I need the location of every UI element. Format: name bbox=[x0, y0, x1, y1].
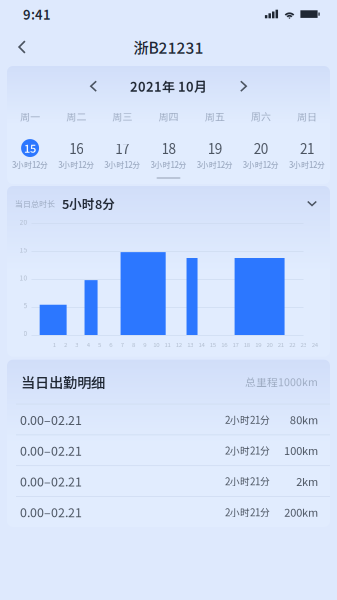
staticText: 5小时8分 bbox=[62, 194, 115, 213]
staticText: 5 bbox=[98, 340, 101, 349]
button[interactable]: 0.00–02.21 bbox=[7, 466, 330, 496]
staticText: 3小时12分 bbox=[197, 159, 233, 170]
button[interactable]: Back bbox=[0, 28, 44, 66]
button[interactable]: 18 bbox=[145, 139, 191, 170]
staticText: 3 bbox=[75, 340, 78, 349]
staticText: 1 bbox=[53, 340, 56, 349]
staticText: 19 bbox=[208, 138, 222, 158]
staticText: 0.00–02.21 bbox=[20, 472, 82, 490]
staticText: 16 bbox=[221, 340, 227, 349]
staticText: 浙B21231 bbox=[133, 36, 203, 58]
staticText: 3小时12分 bbox=[58, 159, 94, 170]
staticText: 21 bbox=[278, 340, 284, 349]
staticText: 12 bbox=[176, 340, 182, 349]
staticText: 2 bbox=[64, 340, 67, 349]
staticText: 23 bbox=[300, 340, 306, 349]
staticText: 周四 bbox=[158, 109, 178, 123]
button[interactable]: 0.00–02.21 bbox=[7, 404, 330, 434]
staticText: 20 bbox=[254, 138, 268, 158]
staticText: 2小时21分 bbox=[225, 505, 270, 519]
button[interactable]: 15 bbox=[7, 139, 53, 170]
staticText: 4 bbox=[87, 340, 90, 349]
staticText: 5 bbox=[23, 301, 27, 310]
staticText: 200km bbox=[284, 504, 318, 520]
staticText: 6 bbox=[109, 340, 112, 349]
button[interactable]: 16 bbox=[53, 139, 99, 170]
staticText: 周五 bbox=[205, 109, 225, 123]
button[interactable]: 0.00–02.21 bbox=[7, 497, 330, 527]
staticText: 15 bbox=[24, 140, 36, 156]
staticText: 20 bbox=[19, 217, 27, 227]
staticText: 2小时21分 bbox=[225, 412, 270, 427]
staticText: 0.00–02.21 bbox=[20, 410, 82, 428]
button[interactable]: Previous month bbox=[79, 74, 107, 98]
staticText: 3小时12分 bbox=[289, 159, 325, 170]
staticText: 15 bbox=[210, 340, 216, 349]
staticText: 15 bbox=[19, 245, 27, 254]
staticText: 7 bbox=[121, 340, 124, 349]
staticText: 3小时12分 bbox=[104, 159, 140, 170]
staticText: 0.00–02.21 bbox=[20, 503, 82, 521]
staticText: 18 bbox=[161, 138, 175, 158]
staticText: 2021年 10月 bbox=[130, 77, 207, 96]
staticText: 周二 bbox=[66, 109, 86, 123]
staticText: 21 bbox=[300, 138, 314, 158]
staticText: 9:41 bbox=[23, 5, 51, 23]
staticText: 周日 bbox=[297, 109, 317, 123]
staticText: 100km bbox=[284, 442, 318, 458]
staticText: 16 bbox=[69, 138, 83, 158]
staticText: 2km bbox=[296, 473, 318, 489]
staticText: 10 bbox=[19, 273, 27, 282]
staticText: 3小时12分 bbox=[12, 159, 48, 170]
button[interactable]: 0.00–02.21 bbox=[7, 435, 330, 465]
staticText: 3小时12分 bbox=[243, 159, 279, 170]
staticText: 9 bbox=[143, 340, 146, 349]
staticText: 8 bbox=[132, 340, 135, 349]
staticText: 周一 bbox=[20, 109, 40, 123]
staticText: 0 bbox=[23, 328, 27, 338]
button[interactable]: Expand bbox=[294, 188, 330, 218]
staticText: 17 bbox=[115, 138, 129, 158]
staticText: 17 bbox=[232, 340, 238, 349]
staticText: 当日出勤明细 bbox=[21, 371, 105, 392]
staticText: 18 bbox=[244, 340, 250, 349]
staticText: 0.00–02.21 bbox=[20, 441, 82, 459]
staticText: 14 bbox=[198, 340, 204, 349]
staticText: 3小时12分 bbox=[150, 159, 186, 170]
button[interactable]: 20 bbox=[238, 139, 284, 170]
staticText: 总里程1000km bbox=[245, 374, 318, 389]
button[interactable]: 21 bbox=[284, 139, 330, 170]
staticText: 20 bbox=[266, 340, 272, 349]
staticText: 19 bbox=[255, 340, 261, 349]
button[interactable]: 17 bbox=[99, 139, 145, 170]
staticText: 22 bbox=[289, 340, 295, 349]
staticText: 2小时21分 bbox=[225, 474, 270, 488]
staticText: 11 bbox=[164, 340, 170, 349]
staticText: 2小时21分 bbox=[225, 443, 270, 457]
staticText: 10 bbox=[153, 340, 159, 349]
staticText: 周三 bbox=[112, 109, 132, 123]
staticText: 24 bbox=[312, 340, 318, 349]
button[interactable]: Next month bbox=[229, 74, 257, 98]
staticText: 80km bbox=[290, 411, 318, 427]
staticText: 周六 bbox=[251, 109, 271, 123]
staticText: 当日总时长 bbox=[15, 198, 55, 209]
staticText: 13 bbox=[187, 340, 193, 349]
button[interactable]: 19 bbox=[192, 139, 238, 170]
